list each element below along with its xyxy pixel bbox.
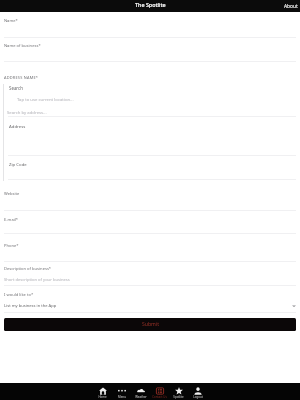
staticText: I would like to* <box>4 292 34 298</box>
button[interactable]: E-mail* <box>4 217 19 223</box>
button[interactable]: Menu <box>112 383 131 400</box>
staticText: Contact Us <box>152 395 167 399</box>
staticText: Short description of your business <box>4 277 70 283</box>
button[interactable]: Description of business* <box>4 266 52 272</box>
staticText: Logout <box>193 395 203 399</box>
staticText: Submit <box>142 321 159 328</box>
button[interactable]: Logout <box>188 383 207 400</box>
staticText: The Spotlite <box>135 1 166 8</box>
button[interactable]: Name of business* <box>4 43 41 49</box>
button[interactable]: Search <box>9 85 23 91</box>
button[interactable]: Zip Code <box>9 161 27 167</box>
staticText: About <box>284 3 298 9</box>
button[interactable]: Name* <box>4 18 18 24</box>
staticText: Menu <box>118 395 126 399</box>
button[interactable]: List my business in the App <box>4 301 296 311</box>
staticText: ADDRESS NAME* <box>4 75 39 80</box>
button[interactable]: Address <box>9 123 26 129</box>
button[interactable]: Phone* <box>4 243 19 249</box>
button[interactable]: Weather <box>131 383 150 400</box>
button[interactable]: Website <box>4 191 20 197</box>
button[interactable]: Search by address... <box>7 109 47 115</box>
button[interactable]: Tap to use current location... <box>17 96 74 102</box>
button[interactable]: Home <box>93 383 112 400</box>
staticText: Home <box>98 395 107 399</box>
staticText: List my business in the App <box>4 303 57 309</box>
button[interactable]: Spotlite <box>169 383 188 400</box>
staticText: Spotlite <box>173 395 184 399</box>
staticText: Weather <box>135 395 147 399</box>
button[interactable]: Contact Us <box>150 383 169 400</box>
button[interactable]: Submit <box>4 318 296 331</box>
button[interactable]: About <box>280 0 300 12</box>
